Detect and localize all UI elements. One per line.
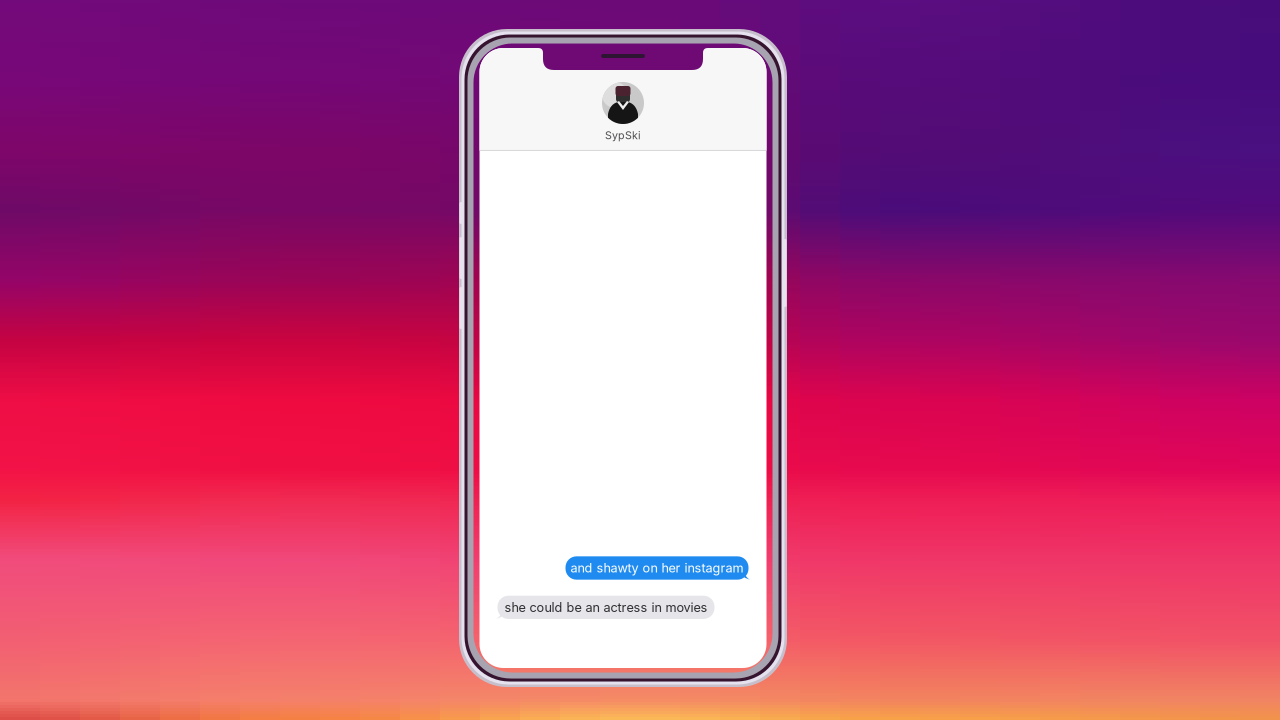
staticText: SypSki	[605, 129, 641, 142]
button[interactable]: SypSki	[479, 48, 766, 150]
staticText: and shawty on her instagram	[570, 560, 743, 576]
staticText: she could be an actress in movies	[504, 600, 707, 615]
